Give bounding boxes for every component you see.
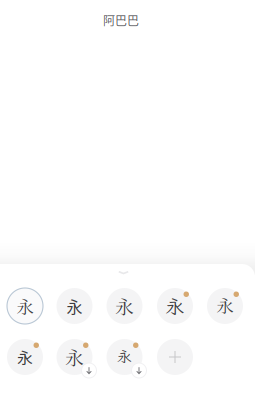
button[interactable]: Add font [150, 332, 200, 382]
staticText: 永 [115, 293, 134, 319]
button[interactable]: 阿巴巴 [66, 7, 176, 33]
button[interactable]: Font LXGW WenKai Mono TC [99, 332, 149, 382]
staticText: 永 [216, 296, 233, 316]
staticText: 阿巴巴 [103, 11, 139, 29]
button[interactable]: Font Noto Serif CJK SC [0, 281, 50, 331]
staticText: 永 [17, 345, 33, 369]
button[interactable]: Font Noto Sans CJK SC [49, 281, 99, 331]
button[interactable]: Font Noto Serif TC [49, 332, 99, 382]
button[interactable]: Font Noto Serif SC [99, 281, 149, 331]
staticText: 永 [117, 348, 132, 365]
button[interactable]: Font Chiron Sung HK [200, 281, 250, 331]
button[interactable]: Font LXGW WenKai TC [150, 281, 200, 331]
staticText: 永 [165, 294, 184, 318]
button[interactable]: Font Noto Sans TC [0, 332, 50, 382]
button[interactable]: Collapse [118, 268, 129, 276]
staticText: 永 [66, 294, 82, 318]
staticText: 永 [16, 293, 33, 318]
staticText: 永 [65, 344, 84, 370]
